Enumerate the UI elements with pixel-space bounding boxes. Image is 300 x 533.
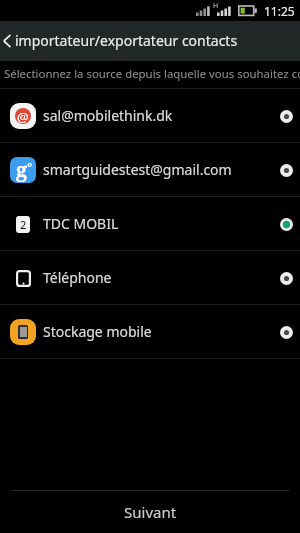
button[interactable]: Back [0,21,300,61]
staticText: g [16,157,28,182]
button[interactable]: 2 [0,197,300,250]
staticText: TDC MOBIL [43,214,119,233]
button[interactable]: Suivant [0,491,300,533]
staticText: Téléphone [43,268,112,287]
staticText: Stockage mobile [43,322,152,341]
staticText: 2 [20,217,27,232]
staticText: importateur/exportateur contacts [15,31,238,50]
button[interactable]: g [0,143,300,196]
staticText: Suivant [124,502,177,522]
button[interactable]: Option [273,157,299,183]
staticText: Sélectionnez la source depuis laquelle v… [4,66,300,82]
button[interactable]: Selected option [273,211,299,237]
button[interactable]: @ [0,89,300,142]
button[interactable]: Option [273,265,299,291]
staticText: H [213,1,219,11]
button[interactable]: Option [273,103,299,129]
staticText: 11:25 [264,3,295,19]
staticText: @ [17,108,29,124]
button[interactable]: Option [273,319,299,345]
other: Back [2,21,12,61]
staticText: smartguidestest@gmail.com [43,160,232,179]
button[interactable]: Téléphone [0,251,300,304]
staticText: sal@mobilethink.dk [43,106,173,125]
button[interactable]: Stockage mobile [0,305,300,358]
